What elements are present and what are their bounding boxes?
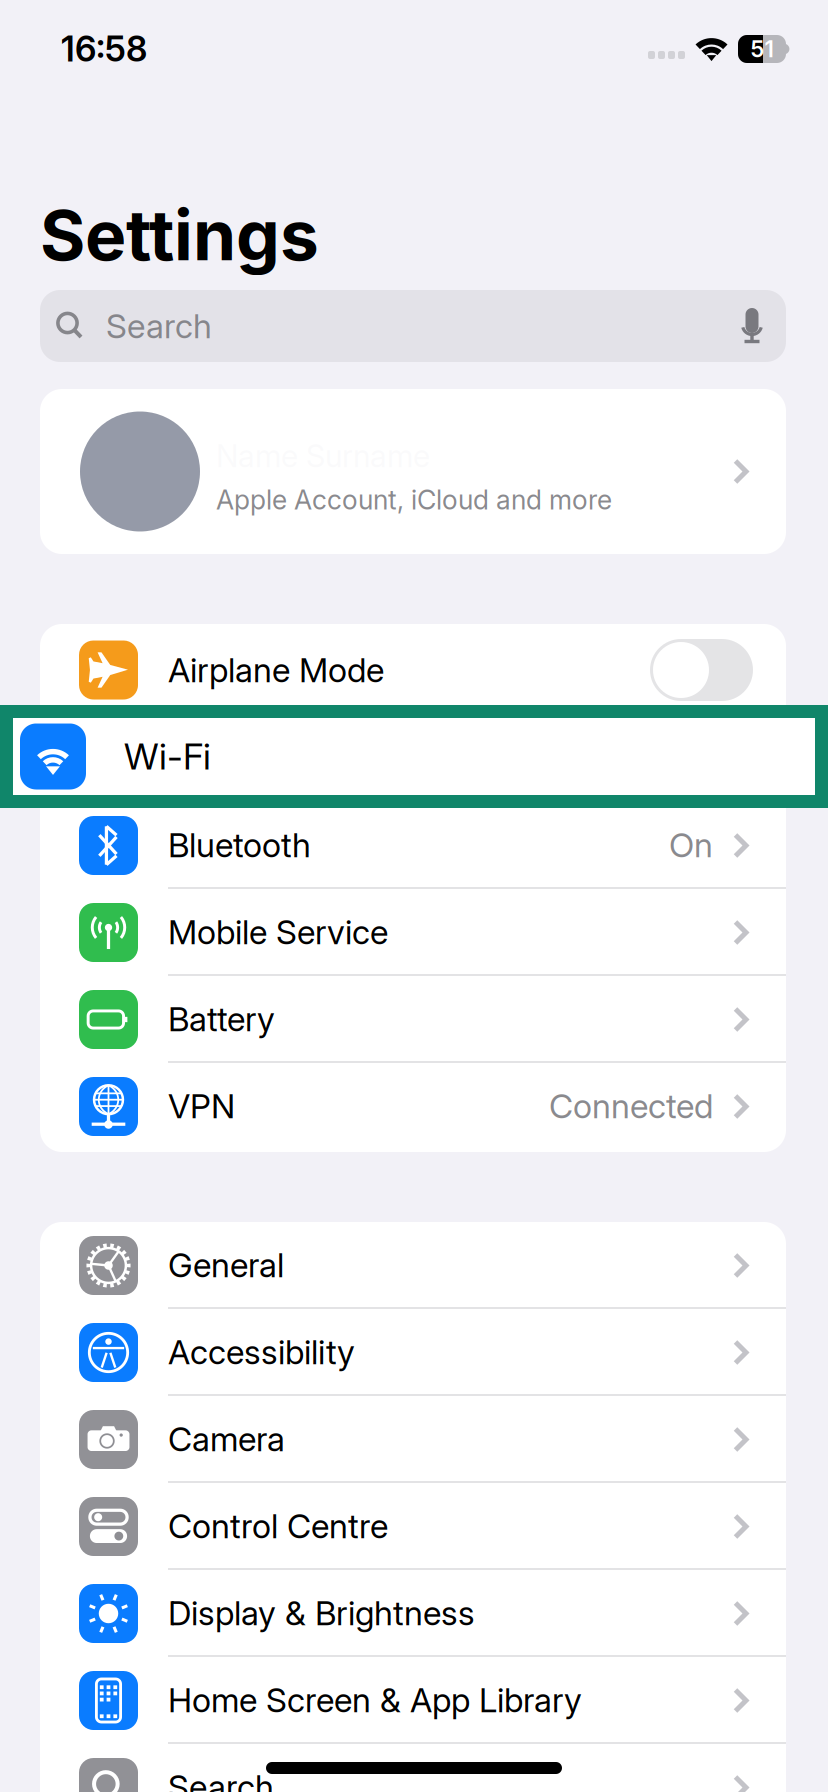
button[interactable]: Wi-Fi [13,718,815,795]
staticText: Search [106,306,212,346]
button[interactable]: Display & Brightness [40,1570,786,1657]
button[interactable]: Bluetooth [40,802,786,889]
staticText: Display & Brightness [168,1593,475,1633]
staticText: Accessibility [168,1332,355,1372]
button[interactable]: Search [40,1744,786,1792]
button[interactable]: Control Centre [40,1483,786,1570]
button[interactable]: Battery [40,976,786,1063]
button[interactable]: General [40,1222,786,1309]
staticText: General [168,1245,284,1285]
staticText: Control Centre [168,1506,388,1546]
staticText: Connected [549,1086,713,1126]
button[interactable]: Camera [40,1396,786,1483]
button[interactable]: Home Screen & App Library [40,1657,786,1744]
staticText: Home Screen & App Library [168,1680,582,1720]
staticText: VPN [168,1086,235,1126]
staticText: Camera [168,1419,285,1459]
staticText: Apple Account, iCloud and more [216,484,612,516]
button[interactable]: Accessibility [40,1309,786,1396]
button[interactable]: Name Surname [40,389,786,554]
button[interactable]: Mobile Service [40,889,786,976]
button[interactable]: VPN [40,1063,786,1150]
button[interactable]: Airplane Mode [40,626,786,714]
staticText: Wi-Fi [124,735,211,778]
staticText: 16:58 [61,28,147,70]
staticText: Airplane Mode [168,650,384,690]
staticText: Settings [40,193,319,277]
staticText: Search [168,1767,274,1792]
staticText: Battery [168,999,275,1039]
staticText: Mobile Service [168,912,388,952]
staticText: Bluetooth [168,825,311,865]
button[interactable]: Search [40,290,786,362]
staticText: On [669,825,713,865]
staticText: 51 [750,35,773,63]
